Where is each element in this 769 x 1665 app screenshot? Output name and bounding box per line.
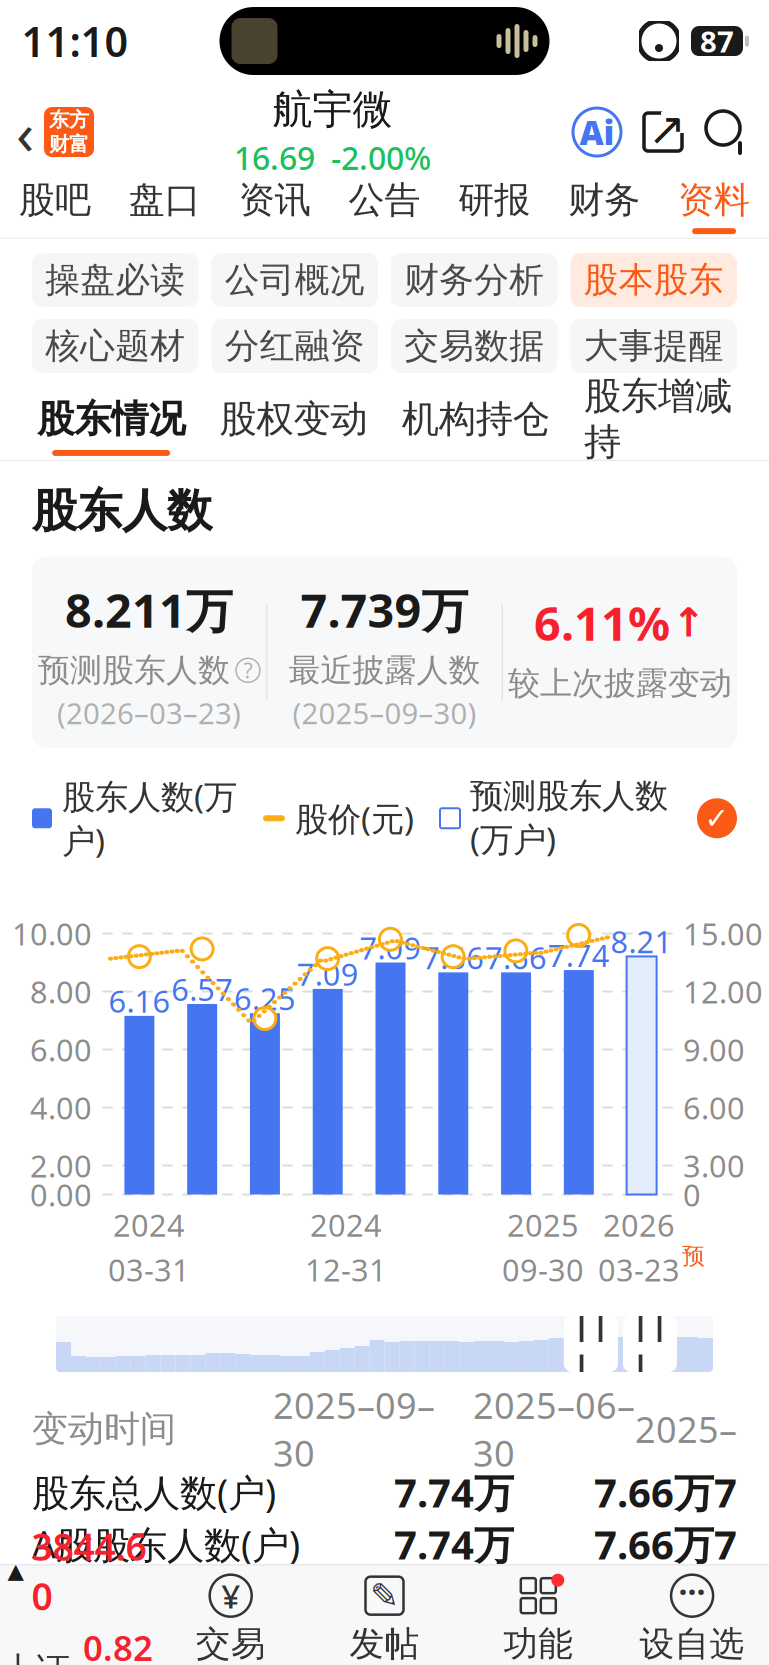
staticText: 8.00 [30, 971, 92, 1012]
staticText: 3.00 [683, 1145, 745, 1186]
button[interactable]: 机构持仓 [384, 391, 567, 461]
staticText: 6.25 [234, 978, 296, 1019]
staticText: 公司概况 [225, 259, 365, 301]
staticText: 2025–06–30 [473, 1381, 635, 1477]
button[interactable]: 资讯 [220, 173, 330, 239]
staticText: (2026–03–23) [57, 693, 241, 732]
staticText: ||| [572, 1298, 610, 1390]
staticText: 预测股东人数 [38, 651, 230, 690]
staticText: 7.74万 [394, 1465, 514, 1518]
staticText: 设自选 [640, 1623, 745, 1665]
button[interactable]: 股本股东 [570, 253, 737, 307]
staticText: 财务分析 [404, 259, 544, 301]
staticText: 上证 [1, 1649, 71, 1665]
staticText: 0.00 [30, 1174, 92, 1215]
staticText: 交易数据 [404, 325, 544, 367]
staticText: 6.11% [534, 592, 670, 654]
button[interactable]: 分享 [639, 108, 687, 156]
staticText: 核心题材 [45, 325, 185, 367]
button[interactable]: 搜索 [703, 108, 751, 156]
staticText: 2026 [603, 1204, 675, 1245]
button[interactable]: 公告 [330, 173, 439, 239]
staticText: ‹ [16, 93, 34, 171]
staticText: 功能 [503, 1623, 573, 1665]
staticText: 最近披露人数 [288, 651, 480, 690]
staticText: 较上次披露变动 [508, 664, 732, 703]
staticText: 15.00 [683, 913, 763, 954]
staticText: 87 [700, 22, 734, 61]
staticText: 股权变动 [219, 396, 367, 442]
staticText: 资料 [678, 178, 750, 222]
staticText: 7.66万 [594, 1517, 714, 1570]
staticText: 12-31 [305, 1249, 387, 1290]
staticText: 7.739万 [300, 579, 468, 641]
staticText: 7 [714, 1465, 737, 1518]
staticText: 股东总人数(户) [32, 1467, 276, 1517]
staticText: 预测股东人数(万户) [470, 776, 668, 861]
staticText: 变动时间 [32, 1407, 176, 1451]
staticText: 03-23 [598, 1249, 680, 1290]
button[interactable]: 财务分析 [391, 253, 557, 307]
staticText: 财富 [49, 132, 89, 157]
button[interactable]: 股东增减持 [567, 391, 749, 461]
staticText: 0 [683, 1174, 701, 1215]
staticText: 机构持仓 [402, 396, 550, 442]
button[interactable]: 右侧手柄 [623, 1316, 677, 1372]
button[interactable]: ▲ [0, 1564, 154, 1665]
button[interactable]: 交易数据 [391, 319, 557, 373]
staticText: 股东情况 [37, 396, 185, 442]
staticText: 16.69 -2.00% [234, 136, 431, 179]
staticText: 0.82% [83, 1624, 153, 1665]
staticText: 8.21 [611, 921, 673, 962]
button[interactable]: AI 助手 [571, 106, 623, 158]
button[interactable]: 操盘必读 [32, 253, 198, 307]
button[interactable]: 大事提醒 [570, 319, 737, 373]
button[interactable]: 股东情况 [20, 391, 202, 461]
staticText: ↗ [648, 103, 686, 155]
button[interactable]: 分红融资 [211, 319, 378, 373]
button[interactable]: 财务 [549, 173, 659, 239]
button[interactable]: 核心题材 [32, 319, 198, 373]
staticText: ✓ [704, 802, 729, 835]
button[interactable]: ✎ [308, 1564, 461, 1665]
staticText: 分红融资 [225, 325, 365, 367]
staticText: 7.74万 [394, 1517, 514, 1570]
staticText: 7.74 [548, 935, 610, 975]
staticText: ||| [631, 1298, 669, 1390]
staticText: 股价(元) [295, 796, 414, 840]
button[interactable]: ¥ [154, 1564, 308, 1665]
button[interactable]: 功能 [461, 1564, 615, 1665]
button[interactable]: 资料 [659, 173, 769, 239]
button[interactable]: 左侧手柄 [564, 1316, 618, 1372]
staticText: 股东增减持 [584, 373, 732, 465]
staticText: 东方 [49, 107, 89, 132]
staticText: 发帖 [349, 1623, 419, 1665]
staticText: ↑ [672, 600, 706, 645]
staticText: 11:10 [21, 14, 128, 68]
staticText: 6.00 [30, 1029, 92, 1070]
staticText: 大事提醒 [584, 325, 724, 367]
button[interactable]: ··· [615, 1564, 769, 1665]
staticText: 交易 [196, 1623, 266, 1665]
button[interactable]: 确认 [697, 798, 737, 838]
staticText: (2025–09–30) [292, 693, 476, 732]
staticText: 3844.60 [31, 1521, 146, 1621]
staticText: A股股东人数(户) [32, 1519, 300, 1569]
button[interactable]: 股权变动 [202, 391, 385, 461]
staticText: 公告 [348, 178, 420, 222]
button[interactable]: 股吧 [0, 173, 110, 239]
staticText: 2025– [635, 1405, 737, 1453]
staticText: 财务 [568, 178, 640, 222]
staticText: 盘口 [129, 178, 201, 222]
staticText: 股本股东 [584, 259, 724, 301]
staticText: 6.00 [683, 1087, 745, 1128]
button[interactable]: 盘口 [110, 173, 220, 239]
staticText: 资讯 [239, 178, 311, 222]
button[interactable]: 研报 [439, 173, 549, 239]
staticText: 9.00 [683, 1029, 745, 1070]
staticText: ··· [679, 1570, 706, 1613]
staticText: 03-31 [108, 1249, 190, 1290]
staticText: 2025 [507, 1204, 579, 1245]
button[interactable]: 返回 [0, 93, 94, 171]
button[interactable]: 公司概况 [211, 253, 378, 307]
